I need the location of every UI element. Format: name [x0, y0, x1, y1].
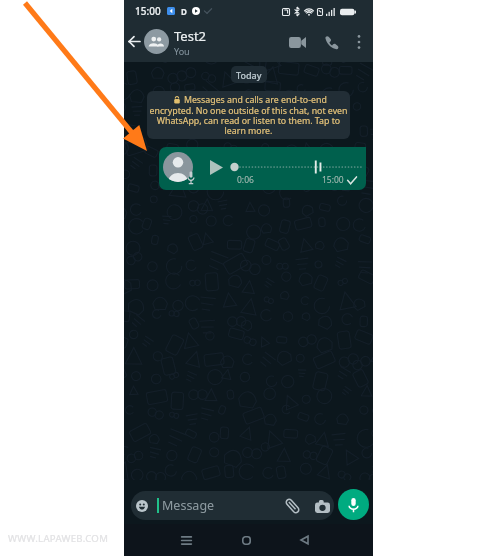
staticText: 15:00 — [135, 4, 161, 18]
button[interactable]: Emoji — [131, 491, 334, 520]
button[interactable]: Recent apps — [172, 526, 200, 554]
staticText: D — [181, 6, 187, 17]
staticText: You — [174, 45, 190, 57]
button[interactable]: Back — [290, 526, 318, 554]
staticText: Test2 — [174, 27, 207, 45]
button[interactable]: Back — [124, 29, 143, 54]
button[interactable]: Video call — [283, 28, 311, 56]
staticText: WWW.LAPAWEB.COM — [8, 532, 109, 545]
button[interactable]: More options — [348, 31, 370, 53]
staticText: 15:00 — [322, 174, 344, 186]
button[interactable]: Play voice message — [159, 147, 366, 190]
button[interactable]: Home — [232, 526, 260, 554]
staticText: Message — [162, 497, 215, 514]
button[interactable]: Attach — [282, 495, 302, 517]
staticText: Today — [236, 69, 262, 81]
button[interactable]: Messages and calls are end-to-end encryp… — [147, 91, 350, 139]
button[interactable]: Emoji — [132, 496, 152, 516]
button[interactable]: Record voice message — [338, 489, 369, 520]
staticText: 0:06 — [237, 174, 254, 186]
staticText: Messages and calls are end-to-end encryp… — [149, 94, 348, 136]
button[interactable]: Voice call — [317, 28, 345, 56]
button[interactable]: Today — [231, 66, 267, 83]
button[interactable]: Camera — [311, 495, 333, 517]
button[interactable]: Play voice message — [207, 156, 225, 178]
